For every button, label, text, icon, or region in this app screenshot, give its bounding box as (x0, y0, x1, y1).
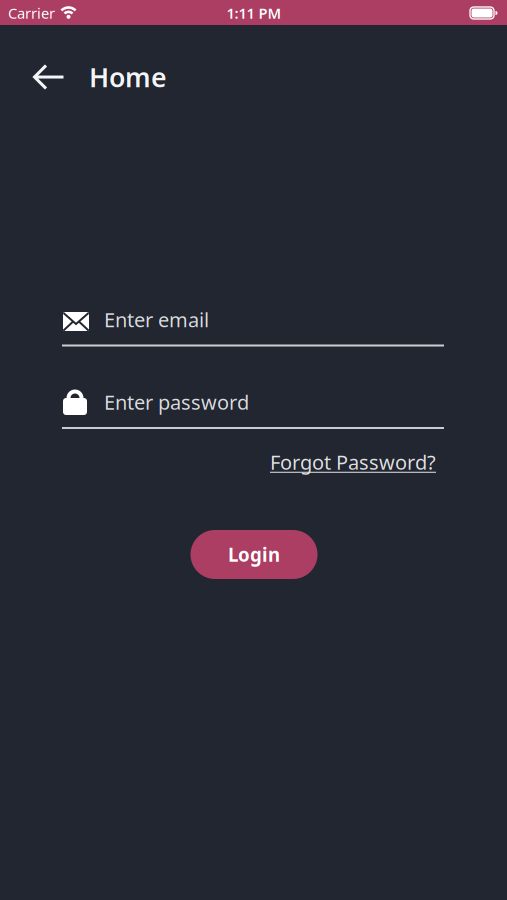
staticText: Login (228, 542, 280, 567)
staticText: Forgot Password? (270, 449, 436, 475)
button[interactable]: Forgot Password? (106, 447, 436, 477)
button[interactable]: Back (27, 55, 71, 99)
button[interactable]: Login (190, 530, 317, 579)
staticText: Home (89, 59, 167, 95)
staticText: 1:11 PM (226, 3, 281, 23)
staticText: Enter email (104, 306, 209, 333)
staticText: Carrier (8, 3, 55, 23)
button[interactable]: Enter email (62, 306, 444, 347)
staticText: Enter password (104, 389, 249, 415)
button[interactable]: Enter password (62, 385, 444, 430)
